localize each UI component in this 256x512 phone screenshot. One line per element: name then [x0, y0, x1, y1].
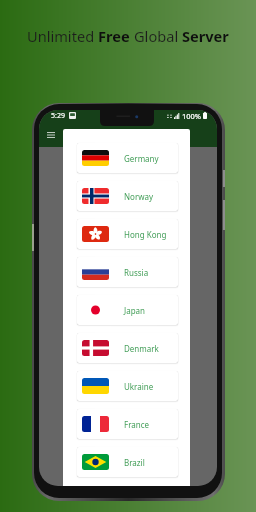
- staticText: 5:29: [51, 111, 65, 121]
- staticText: Server: [182, 26, 229, 46]
- staticText: Brazil: [124, 457, 145, 468]
- button[interactable]: Germany: [77, 143, 178, 173]
- staticText: Global: [134, 26, 182, 46]
- button[interactable]: Open navigation menu: [42, 126, 60, 144]
- staticText: Russia: [124, 267, 149, 278]
- button[interactable]: Russia: [77, 257, 178, 287]
- staticText: Norway: [124, 191, 154, 202]
- button[interactable]: Norway: [77, 181, 178, 211]
- staticText: Ukraine: [124, 381, 154, 392]
- button[interactable]: Ukraine: [77, 371, 178, 401]
- staticText: Unlimited: [27, 26, 98, 46]
- button[interactable]: France: [77, 409, 178, 439]
- staticText: Hong Kong: [124, 229, 167, 240]
- button[interactable]: Denmark: [77, 333, 178, 363]
- button[interactable]: Brazil: [77, 447, 178, 477]
- staticText: Denmark: [124, 343, 159, 354]
- button[interactable]: Japan: [77, 295, 178, 325]
- staticText: Free: [98, 26, 134, 46]
- staticText: France: [124, 419, 150, 430]
- button[interactable]: Hong Kong: [77, 219, 178, 249]
- staticText: Japan: [124, 305, 146, 316]
- staticText: 100%: [182, 111, 202, 121]
- staticText: Germany: [124, 153, 159, 164]
